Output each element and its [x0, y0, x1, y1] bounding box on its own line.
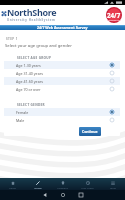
staticText: Female — [16, 110, 29, 115]
button[interactable]: Recent apps — [72, 190, 90, 200]
staticText: Age 70 or over — [16, 87, 41, 92]
button[interactable]: Locations — [50, 178, 75, 190]
staticText: STEP 1 — [6, 37, 18, 41]
staticText: Male — [16, 118, 25, 123]
staticText: Wait Times — [81, 186, 94, 189]
button[interactable]: 24/7 immediate care — [106, 7, 122, 23]
button[interactable]: Age 31-40 years — [4, 69, 120, 77]
button[interactable]: Age 1-30 years — [4, 61, 120, 69]
button[interactable]: Home — [54, 190, 72, 200]
staticText: 24/7 Web Assessment Survey — [37, 25, 88, 30]
staticText: More — [110, 186, 116, 189]
button[interactable]: Male — [4, 116, 120, 124]
button[interactable]: Back — [36, 190, 54, 200]
staticText: SELECT GENDER — [17, 103, 45, 107]
staticText: Survey — [34, 186, 42, 189]
staticText: Home — [9, 186, 16, 189]
staticText: SELECT AGE GROUP — [17, 56, 52, 60]
staticText: Age 41-60 years — [16, 79, 43, 84]
staticText: Select your age group and gender — [5, 43, 72, 49]
button[interactable]: More — [100, 178, 125, 190]
staticText: Locations — [57, 186, 68, 189]
staticText: Continue — [82, 129, 98, 134]
button[interactable]: Female — [4, 108, 120, 116]
staticText: Age 1-30 years — [16, 63, 41, 68]
staticText: Age 31-40 years — [16, 71, 43, 76]
staticText: University HealthSystem — [7, 18, 56, 22]
button[interactable]: Age 41-60 years — [4, 77, 120, 85]
staticText: immediate care — [107, 19, 121, 22]
button[interactable]: Wait Times — [75, 178, 100, 190]
button[interactable]: Age 70 or over — [4, 85, 120, 93]
staticText: 24/7 — [107, 11, 121, 19]
button[interactable]: Survey — [25, 178, 50, 190]
button[interactable]: Continue — [79, 127, 101, 136]
button[interactable]: Home — [0, 178, 25, 190]
staticText: NorthShore — [7, 6, 57, 18]
